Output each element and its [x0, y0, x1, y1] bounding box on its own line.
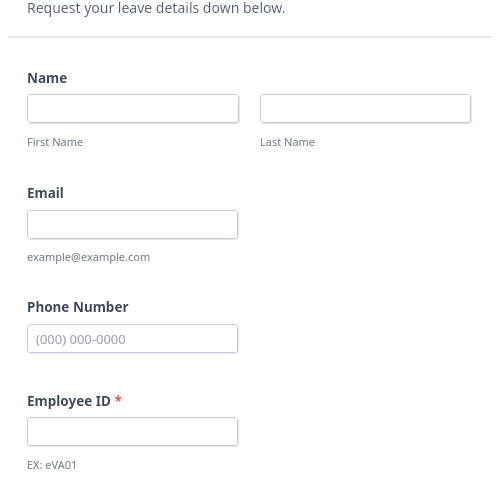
button[interactable]: First Name input: [27, 94, 240, 124]
staticText: Name: [27, 69, 68, 87]
staticText: Request your leave details down below.: [27, 0, 286, 17]
staticText: example@example.com: [27, 249, 151, 264]
staticText: Email: [27, 184, 64, 202]
staticText: (000) 000-0000: [36, 330, 126, 348]
button[interactable]: Last Name input: [260, 94, 472, 124]
staticText: First Name: [27, 134, 84, 149]
staticText: Employee ID *: [27, 392, 122, 410]
button[interactable]: Email input: [27, 210, 239, 240]
staticText: EX: eVA01: [27, 457, 78, 472]
staticText: Phone Number: [27, 298, 129, 316]
button[interactable]: Employee ID input: [27, 417, 239, 447]
staticText: Last Name: [260, 134, 316, 149]
button[interactable]: Phone Number input: [27, 324, 239, 354]
